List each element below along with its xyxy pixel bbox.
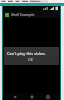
staticText: Can't play this video. bbox=[7, 51, 46, 56]
staticText: OK bbox=[28, 57, 33, 62]
staticText: Shell Example bbox=[11, 12, 35, 17]
button[interactable]: Back bbox=[10, 93, 20, 100]
button[interactable]: Recent apps bbox=[43, 93, 53, 100]
button[interactable]: OK bbox=[26, 56, 35, 63]
button[interactable]: Home bbox=[27, 93, 37, 100]
